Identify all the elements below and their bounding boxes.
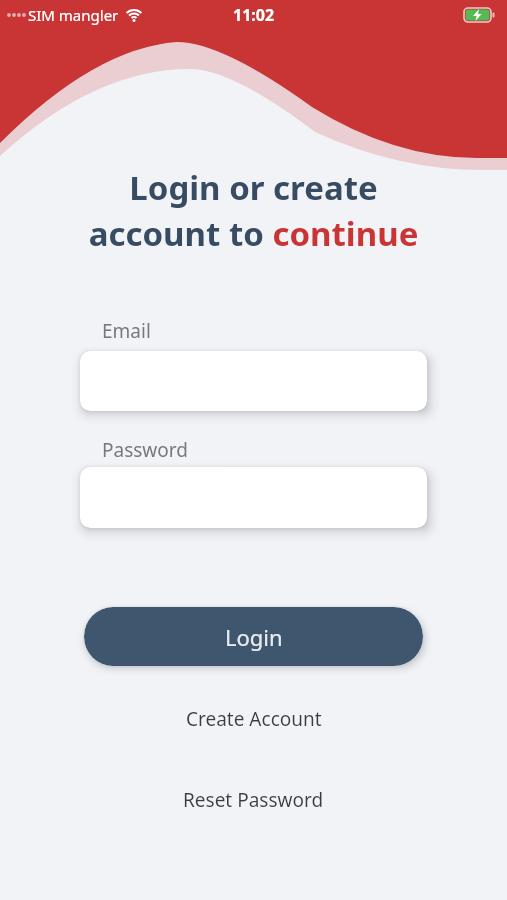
button[interactable]: Reset Password	[183, 787, 324, 813]
staticText: 11:02	[233, 4, 275, 26]
staticText: SIM mangler	[28, 5, 119, 25]
staticText: Login	[225, 622, 283, 652]
staticText: Create Account	[186, 706, 322, 732]
button[interactable]: Login	[84, 607, 423, 666]
button[interactable]: Create Account	[186, 706, 322, 732]
staticText: Password	[102, 437, 188, 463]
staticText: Login or create account to continue	[0, 165, 507, 256]
staticText: Reset Password	[183, 787, 324, 813]
staticText: Email	[102, 318, 151, 344]
